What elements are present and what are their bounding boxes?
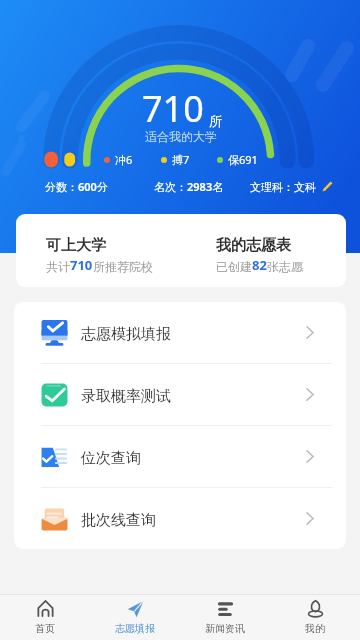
staticText: 名次：2983名 [154, 179, 224, 194]
staticText: 文理科：文科 [250, 180, 316, 194]
staticText: 82 [252, 256, 267, 274]
staticText: 志愿模拟填报 [81, 325, 171, 344]
staticText: 保691 [228, 152, 258, 167]
staticText: 所 [209, 113, 222, 129]
staticText: 张志愿 [267, 259, 303, 274]
other: Edit [322, 181, 333, 192]
staticText: 首页 [35, 622, 55, 635]
staticText: 我的 [305, 622, 325, 635]
staticText: 位次查询 [81, 449, 141, 468]
button[interactable]: 录取概率测试 [14, 364, 346, 425]
staticText: 适合我的大学 [145, 129, 217, 144]
button[interactable]: 首页 [0, 595, 90, 640]
staticText: 分数：600分 [45, 179, 108, 194]
button[interactable]: 批次线查询 [14, 488, 346, 549]
staticText: 搏7 [172, 152, 190, 167]
staticText: 新闻资讯 [205, 622, 245, 635]
staticText: 共计 [46, 259, 70, 274]
staticText: 710 [70, 256, 93, 274]
staticText: 冲6 [115, 152, 133, 167]
staticText: 志愿填报 [115, 622, 155, 635]
staticText: 可上大学 [46, 236, 106, 255]
staticText: 我的志愿表 [216, 236, 291, 255]
button[interactable]: 我的志愿表 [186, 214, 346, 287]
staticText: 录取概率测试 [81, 387, 171, 406]
staticText: 批次线查询 [81, 511, 156, 530]
button[interactable]: 可上大学 [16, 214, 186, 287]
button[interactable]: 位次查询 [14, 426, 346, 487]
staticText: 所推荐院校 [93, 259, 153, 274]
staticText: 已创建 [216, 259, 252, 274]
button[interactable]: 志愿模拟填报 [14, 302, 346, 363]
staticText: 710 [142, 84, 204, 133]
button[interactable]: 新闻资讯 [180, 595, 270, 640]
button[interactable]: 志愿填报 [90, 595, 180, 640]
button[interactable]: 我的 [270, 595, 360, 640]
